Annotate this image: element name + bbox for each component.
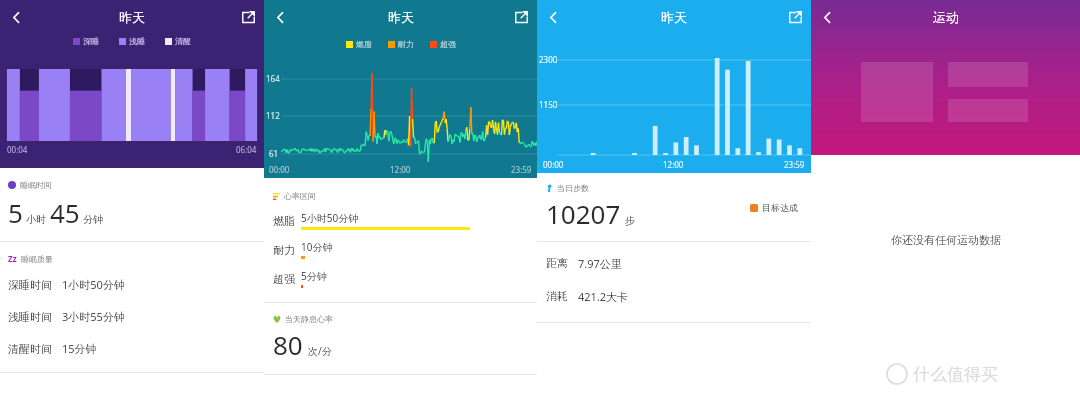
staticText: 61: [269, 148, 279, 159]
staticText: 超强: [440, 39, 456, 49]
staticText: 15分钟: [62, 341, 97, 356]
staticText: 浅睡: [129, 36, 145, 46]
button[interactable]: 深睡时间: [8, 277, 256, 292]
button[interactable]: 消耗: [546, 289, 802, 304]
staticText: 心率区间: [284, 191, 316, 201]
button[interactable]: 目标达成: [750, 202, 798, 213]
button[interactable]: Share: [508, 4, 534, 30]
staticText: 00:00: [543, 159, 564, 170]
staticText: 12:00: [663, 159, 684, 170]
staticText: 10207: [546, 196, 621, 231]
staticText: 燃脂: [356, 39, 372, 49]
staticText: 12:00: [390, 164, 411, 175]
button[interactable]: 超强: [273, 269, 528, 288]
staticText: 10分钟: [301, 240, 333, 254]
staticText: 112: [266, 110, 280, 121]
staticText: 步: [625, 214, 635, 227]
staticText: 45: [50, 195, 80, 230]
staticText: 1150: [539, 99, 558, 110]
staticText: 耐力: [273, 243, 295, 257]
staticText: 06:04: [236, 144, 257, 155]
staticText: 次/分: [308, 344, 332, 358]
button[interactable]: Share: [235, 4, 261, 30]
staticText: 什么值得买: [913, 364, 998, 385]
staticText: 昨天: [119, 9, 145, 25]
staticText: 23:59: [784, 159, 805, 170]
staticText: 当日步数: [557, 183, 589, 193]
button[interactable]: Back: [267, 4, 293, 30]
staticText: 1小时50分钟: [62, 277, 125, 292]
button[interactable]: 浅睡时间: [8, 309, 256, 324]
staticText: 小时: [26, 213, 46, 226]
staticText: 00:04: [7, 144, 28, 155]
staticText: 当天静息心率: [285, 314, 333, 324]
button[interactable]: Back: [540, 4, 566, 30]
staticText: 消耗: [546, 289, 568, 303]
staticText: 昨天: [388, 9, 414, 25]
staticText: 清醒: [175, 36, 191, 46]
staticText: 421.2大卡: [578, 289, 629, 304]
button[interactable]: Back: [814, 4, 840, 30]
staticText: 深睡时间: [8, 278, 52, 292]
button[interactable]: 耐力: [273, 240, 528, 259]
staticText: 耐力: [398, 39, 414, 49]
staticText: 睡眠质量: [21, 254, 53, 264]
staticText: 80: [273, 327, 303, 362]
staticText: 燃脂: [273, 214, 295, 228]
staticText: 目标达成: [762, 202, 798, 213]
button[interactable]: 燃脂: [273, 211, 528, 230]
button[interactable]: 距离: [546, 256, 802, 271]
staticText: 运动: [933, 9, 959, 25]
staticText: 23:59: [511, 164, 532, 175]
staticText: 昨天: [661, 9, 687, 25]
staticText: 5: [8, 195, 23, 230]
staticText: 浅睡时间: [8, 310, 52, 324]
button[interactable]: Back: [3, 4, 29, 30]
staticText: Zz: [8, 253, 17, 264]
staticText: 7.97公里: [578, 256, 622, 271]
staticText: 距离: [546, 256, 568, 270]
staticText: 2300: [539, 54, 558, 65]
staticText: 清醒时间: [8, 342, 52, 356]
staticText: 你还没有任何运动数据: [891, 233, 1001, 247]
staticText: 5小时50分钟: [301, 211, 359, 225]
staticText: 5分钟: [301, 269, 327, 283]
staticText: 00:00: [269, 164, 290, 175]
staticText: 睡眠时间: [20, 180, 52, 190]
button[interactable]: Share: [782, 4, 808, 30]
staticText: 3小时55分钟: [62, 309, 125, 324]
staticText: 164: [266, 73, 280, 84]
staticText: 深睡: [83, 36, 99, 46]
staticText: 超强: [273, 272, 295, 286]
staticText: 分钟: [83, 213, 103, 226]
button[interactable]: 清醒时间: [8, 341, 256, 356]
